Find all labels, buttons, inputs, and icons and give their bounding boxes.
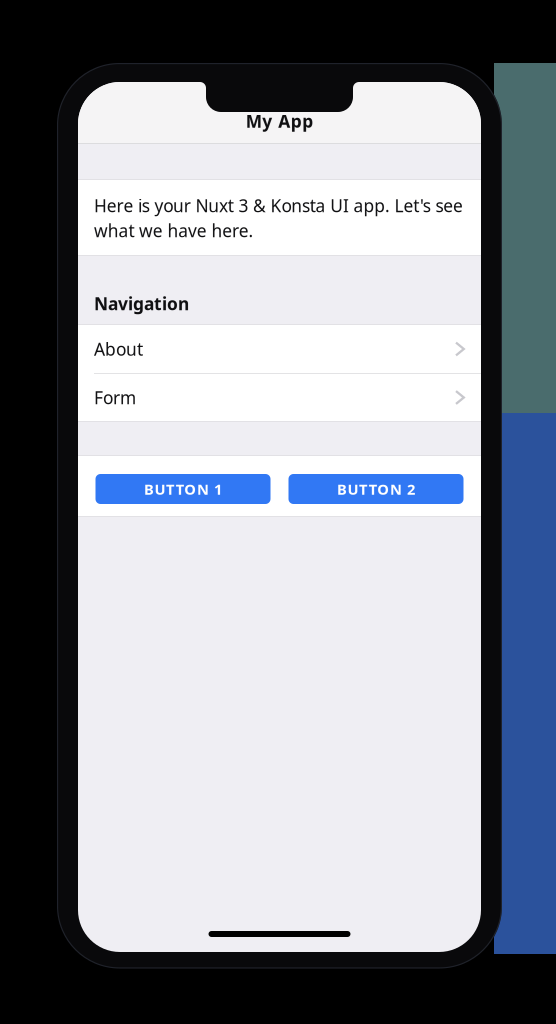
staticText: Form xyxy=(94,386,136,409)
staticText: My App xyxy=(246,109,313,132)
button[interactable]: BUTTON 1 xyxy=(95,474,270,504)
button[interactable]: About xyxy=(78,325,481,372)
staticText: Here is your Nuxt 3 & Konsta UI app. Let… xyxy=(94,194,463,242)
button[interactable]: BUTTON 2 xyxy=(288,474,463,504)
staticText: Navigation xyxy=(94,292,189,315)
staticText: About xyxy=(94,337,143,360)
staticText: BUTTON 1 xyxy=(144,479,222,499)
staticText: BUTTON 2 xyxy=(337,479,415,499)
button[interactable]: Form xyxy=(78,374,481,421)
